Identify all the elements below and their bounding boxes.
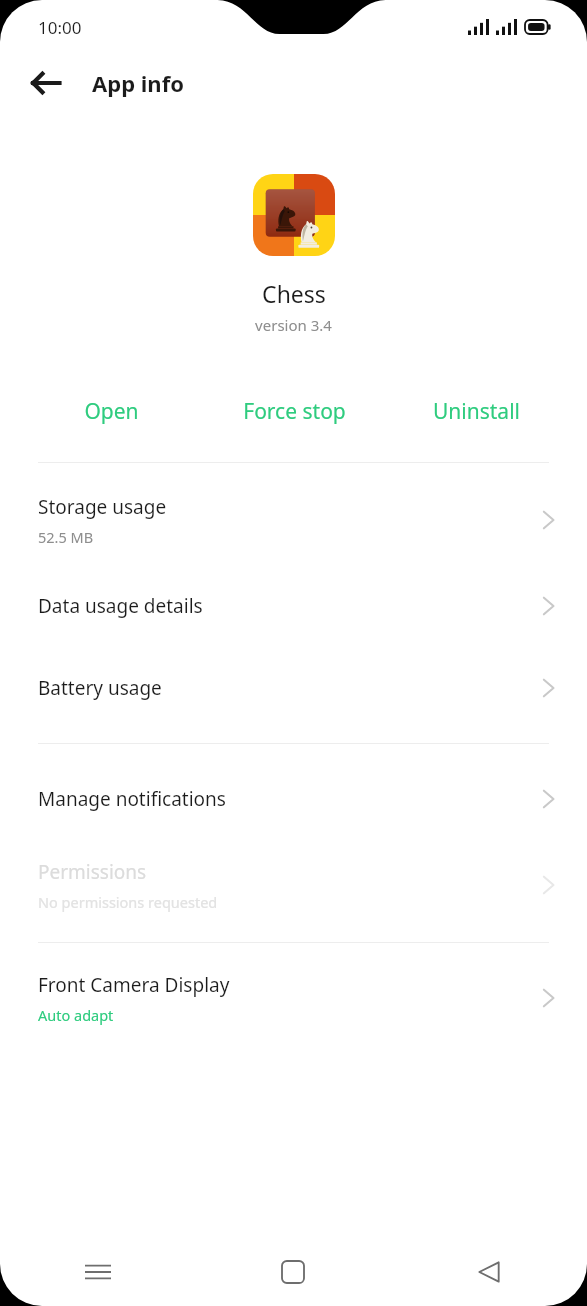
staticText: 52.5 MB	[38, 527, 94, 547]
button[interactable]: Battery usage	[0, 647, 587, 729]
staticText: Auto adapt	[38, 1005, 114, 1025]
staticText: 10:00	[38, 16, 82, 39]
staticText: Front Camera Display	[38, 972, 230, 998]
staticText: Data usage details	[38, 593, 203, 619]
button[interactable]: Manage notifications	[0, 758, 587, 840]
staticText: Chess	[262, 278, 326, 309]
staticText: Manage notifications	[38, 786, 226, 812]
button[interactable]: Permissions	[0, 840, 587, 930]
button[interactable]: Force stop	[203, 387, 385, 436]
button[interactable]: Back	[391, 1238, 587, 1306]
staticText: Permissions	[38, 859, 147, 885]
staticText: version 3.4	[255, 315, 332, 335]
button[interactable]: Uninstall	[385, 387, 567, 436]
button[interactable]: Open	[20, 387, 203, 436]
staticText: Open	[84, 397, 139, 426]
staticText: Uninstall	[433, 397, 520, 426]
staticText: Battery usage	[38, 675, 162, 701]
button[interactable]: Data usage details	[0, 565, 587, 647]
button[interactable]: Storage usage	[0, 475, 587, 565]
button[interactable]: Recents	[0, 1238, 195, 1306]
button[interactable]: Home	[195, 1238, 391, 1306]
staticText: App info	[92, 68, 184, 98]
staticText: Storage usage	[38, 494, 167, 520]
staticText: No permissions requested	[38, 892, 218, 912]
button[interactable]: Back	[22, 59, 70, 107]
staticText: Force stop	[243, 397, 346, 426]
button[interactable]: Front Camera Display	[0, 953, 587, 1043]
